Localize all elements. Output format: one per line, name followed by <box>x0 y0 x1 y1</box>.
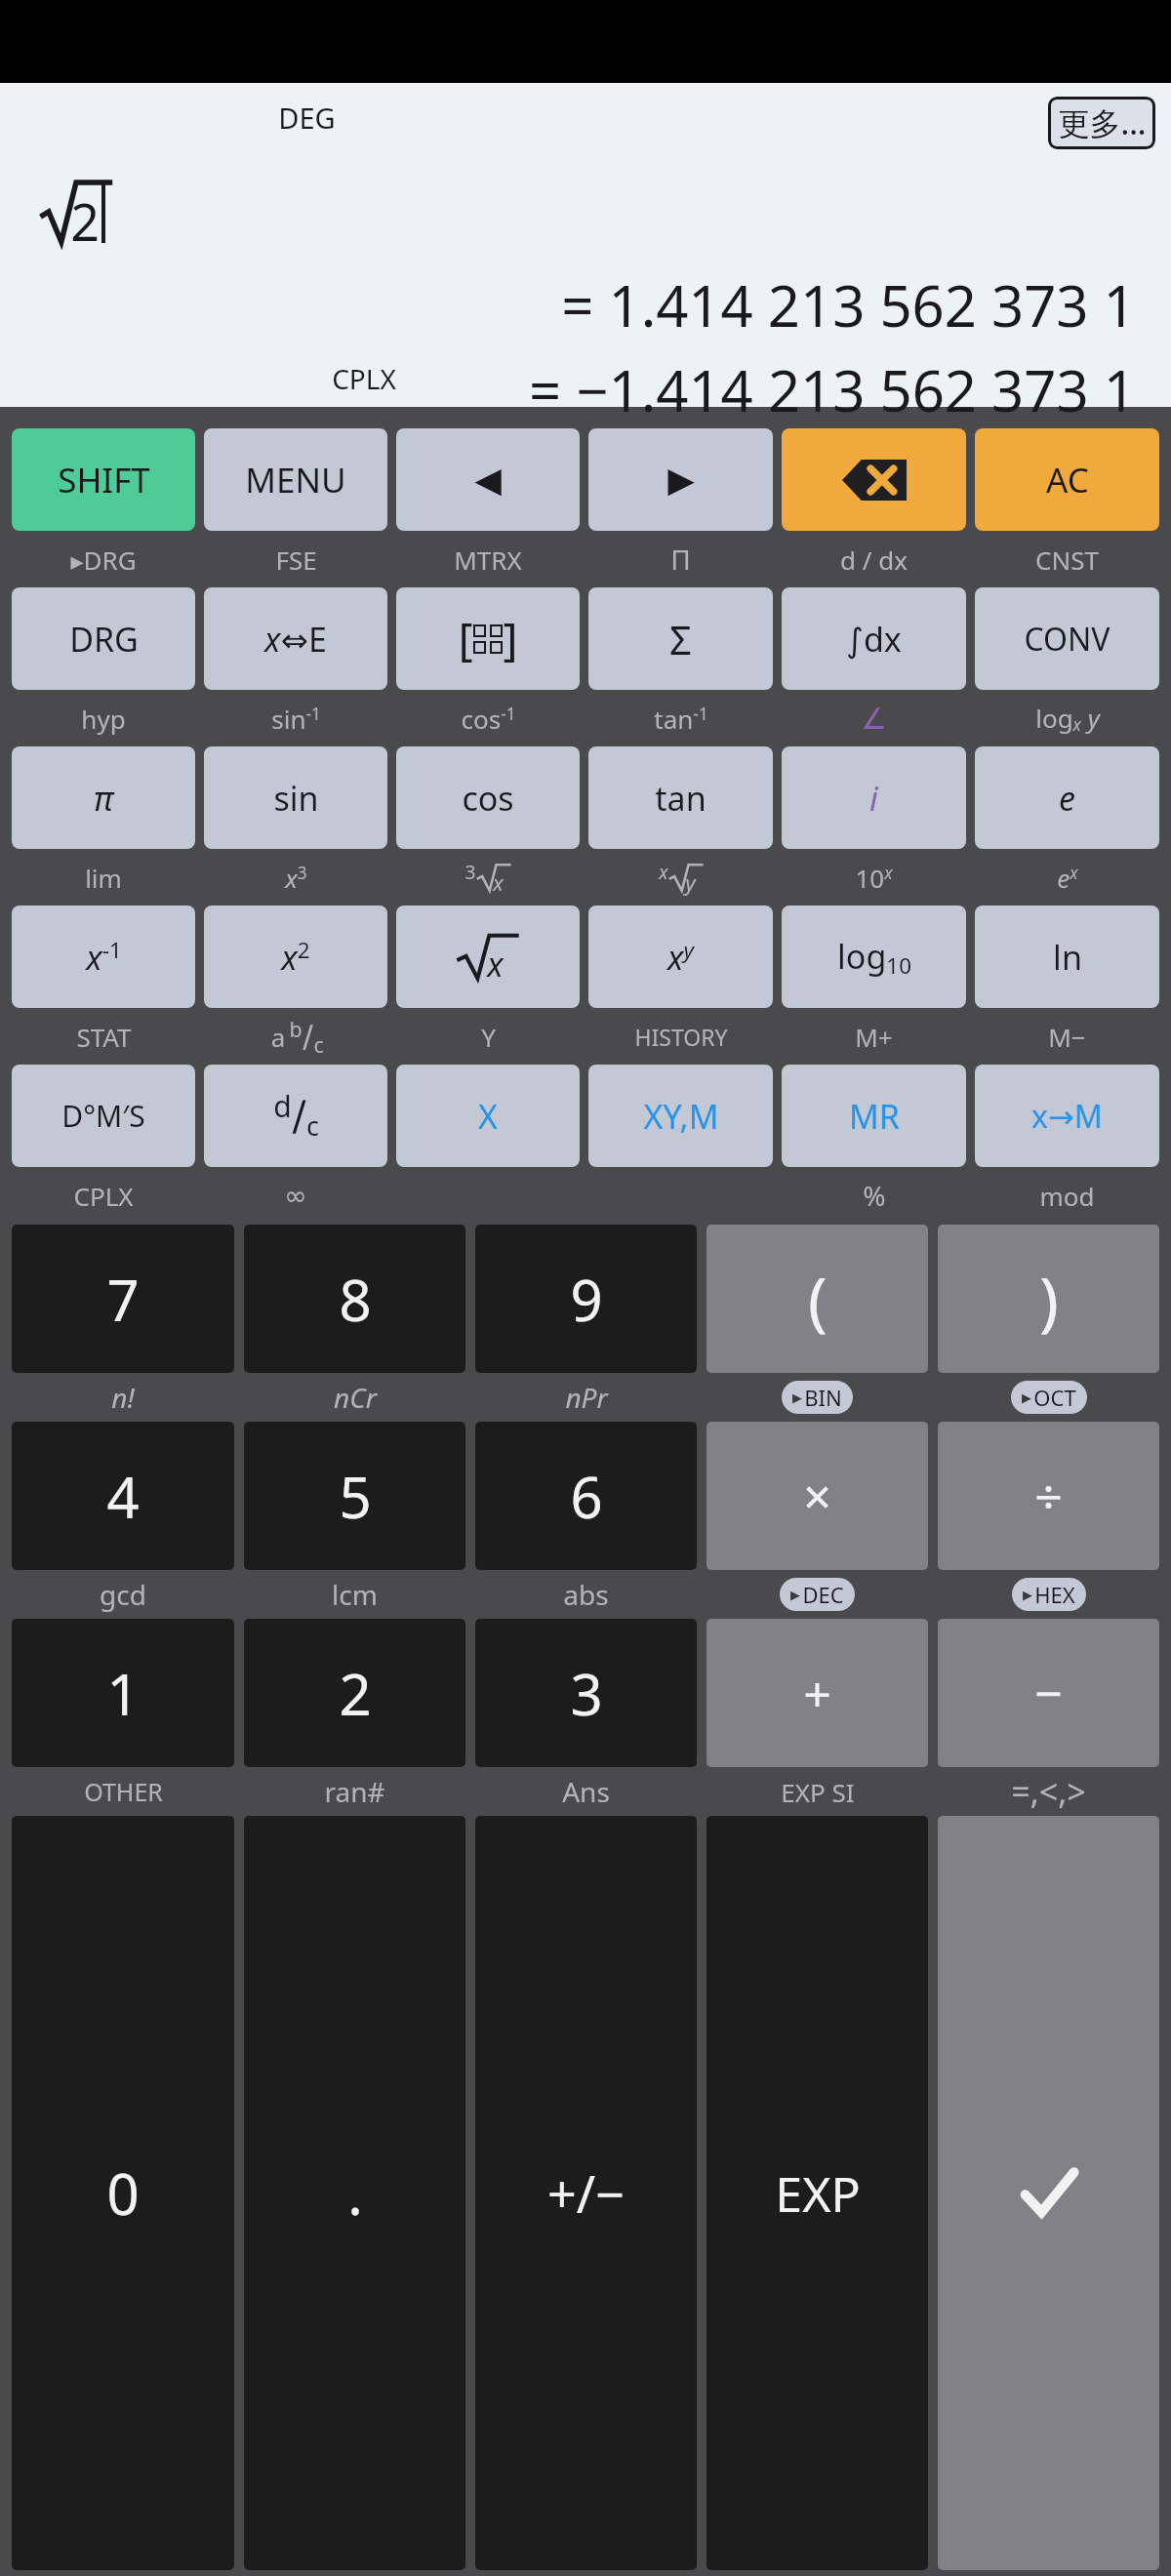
button[interactable]: 3 <box>475 1619 697 1767</box>
button[interactable]: 8 <box>244 1225 465 1373</box>
staticText: AC <box>1046 457 1089 503</box>
button[interactable]: sin <box>204 746 387 849</box>
staticText: CNST <box>1035 543 1099 577</box>
staticText: M+ <box>855 1020 893 1054</box>
staticText: ∠ <box>861 702 887 736</box>
button[interactable]: x-1 <box>12 906 195 1008</box>
staticText: 9 <box>570 1261 603 1338</box>
staticText: lim <box>85 861 122 895</box>
button[interactable]: Cursor right <box>588 428 773 531</box>
button[interactable]: CONV <box>975 587 1159 690</box>
staticText: = −1.414 213 562 373 1 <box>529 351 1136 428</box>
staticText: OCT <box>1033 1383 1076 1412</box>
button[interactable]: Matrix <box>396 587 580 690</box>
button[interactable]: × <box>707 1422 928 1570</box>
button[interactable]: +/− <box>475 1816 697 2570</box>
staticText: 3 <box>464 859 476 884</box>
staticText: XY,M <box>643 1094 719 1139</box>
staticText: ▶ <box>1022 1390 1031 1405</box>
button[interactable]: log10 <box>782 906 966 1008</box>
button[interactable]: 1 <box>12 1619 234 1767</box>
button[interactable]: DRG <box>12 587 195 690</box>
button[interactable]: 更多... <box>1048 97 1155 149</box>
staticText: [ <box>458 608 473 669</box>
button[interactable]: MR <box>782 1065 966 1167</box>
staticText: ] <box>503 608 518 669</box>
button[interactable]: 2 <box>244 1619 465 1767</box>
staticText: CPLX <box>73 1179 134 1213</box>
button[interactable]: X <box>396 1065 580 1167</box>
button[interactable]: D°M′S <box>12 1065 195 1167</box>
staticText: lcm <box>332 1576 378 1613</box>
button[interactable]: 4 <box>12 1422 234 1570</box>
staticText: П <box>670 541 691 578</box>
button[interactable]: 7 <box>12 1225 234 1373</box>
staticText: 5 <box>339 1458 372 1535</box>
staticText: ln <box>1053 935 1082 980</box>
staticText: ▶ <box>667 460 695 501</box>
button[interactable]: x <box>396 906 580 1008</box>
staticText: ▶ <box>792 1390 802 1405</box>
button[interactable]: ▶ <box>1023 1580 1075 1609</box>
button[interactable]: 9 <box>475 1225 697 1373</box>
staticText: x <box>493 867 504 897</box>
staticText: HISTORY <box>634 1022 728 1052</box>
staticText: ∕ <box>303 1019 313 1054</box>
staticText: hyp <box>81 702 126 736</box>
button[interactable]: x2 <box>204 906 387 1008</box>
button[interactable]: Backspace <box>782 428 966 531</box>
button[interactable]: x→M <box>975 1065 1159 1167</box>
staticText: ( <box>808 1255 828 1343</box>
button[interactable]: ▶ <box>1022 1383 1076 1412</box>
staticText: − <box>1034 1660 1063 1726</box>
button[interactable]: EXP <box>707 1816 928 2570</box>
button[interactable]: d <box>204 1065 387 1167</box>
staticText: % <box>863 1177 886 1214</box>
staticText: x⇔E <box>264 617 327 662</box>
staticText: 更多... <box>1058 101 1147 144</box>
staticText: ∫dx <box>846 617 902 662</box>
staticText: ) <box>1039 1255 1059 1343</box>
button[interactable]: Cursor left <box>396 428 580 531</box>
button[interactable]: SHIFT <box>12 428 195 531</box>
button[interactable]: ÷ <box>938 1422 1159 1570</box>
button[interactable]: − <box>938 1619 1159 1767</box>
button[interactable]: ∫dx <box>782 587 966 690</box>
button[interactable]: e <box>975 746 1159 849</box>
button[interactable]: ▶ <box>790 1580 844 1609</box>
button[interactable]: ( <box>707 1225 928 1373</box>
button[interactable]: Σ <box>588 587 773 690</box>
staticText: D°M′S <box>61 1096 145 1136</box>
button[interactable]: i <box>782 746 966 849</box>
button[interactable]: Equals <box>938 1816 1159 2570</box>
staticText: log10 <box>837 934 911 980</box>
button[interactable]: . <box>244 1816 465 2570</box>
button[interactable]: ▶ <box>792 1383 842 1412</box>
staticText: nPr <box>565 1379 608 1416</box>
button[interactable]: cos <box>396 746 580 849</box>
button[interactable]: + <box>707 1619 928 1767</box>
staticText: gcd <box>100 1576 146 1613</box>
staticText: SHIFT <box>58 457 150 503</box>
staticText: STAT <box>76 1020 132 1054</box>
button[interactable]: ln <box>975 906 1159 1008</box>
button[interactable]: x⇔E <box>204 587 387 690</box>
button[interactable]: 0 <box>12 1816 234 2570</box>
button[interactable]: AC <box>975 428 1159 531</box>
staticText: x <box>487 942 504 986</box>
staticText: DRG <box>69 617 139 662</box>
staticText: 1 <box>106 1655 140 1732</box>
staticText: x <box>659 859 668 884</box>
button[interactable]: ) <box>938 1225 1159 1373</box>
button[interactable]: 6 <box>475 1422 697 1570</box>
button[interactable]: π <box>12 746 195 849</box>
button[interactable]: xy <box>588 906 773 1008</box>
button[interactable]: MENU <box>204 428 387 531</box>
staticText: ∕ <box>292 1092 306 1140</box>
staticText: 2 <box>339 1655 372 1732</box>
staticText: 7 <box>106 1261 140 1338</box>
button[interactable]: XY,M <box>588 1065 773 1167</box>
button[interactable]: 5 <box>244 1422 465 1570</box>
staticText: c <box>306 1107 319 1144</box>
button[interactable]: tan <box>588 746 773 849</box>
